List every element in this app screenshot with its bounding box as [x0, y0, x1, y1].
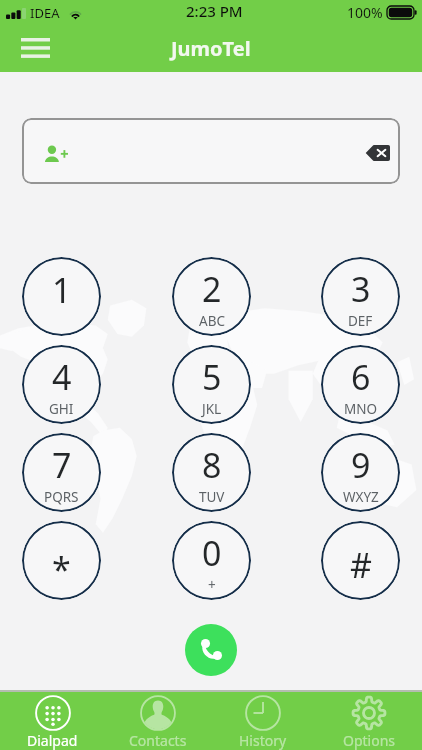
button[interactable]: 4: [22, 345, 101, 424]
button[interactable]: Call: [185, 624, 237, 676]
button[interactable]: 7: [22, 433, 101, 512]
button[interactable]: Dialpad: [0, 692, 105, 750]
staticText: *: [52, 546, 71, 592]
staticText: ABC: [199, 312, 225, 330]
staticText: #: [350, 542, 372, 588]
staticText: 5: [202, 354, 222, 400]
staticText: 2: [202, 266, 222, 312]
button[interactable]: Options: [316, 692, 422, 750]
staticText: IDEA: [30, 4, 60, 22]
button[interactable]: Contacts: [105, 692, 210, 750]
staticText: 3: [351, 266, 371, 312]
button[interactable]: 2: [172, 257, 251, 336]
staticText: 2:23 PM: [186, 1, 243, 21]
staticText: TUV: [199, 488, 225, 506]
button[interactable]: 0: [172, 521, 251, 600]
staticText: WXYZ: [343, 488, 379, 506]
staticText: 100%: [347, 3, 383, 22]
staticText: DEF: [348, 312, 373, 330]
staticText: MNO: [344, 400, 378, 418]
staticText: 9: [351, 442, 371, 488]
button[interactable]: Add contact: [44, 145, 68, 162]
staticText: GHI: [49, 400, 74, 418]
staticText: Dialpad: [27, 731, 78, 750]
staticText: Options: [343, 731, 396, 750]
button[interactable]: Menu: [9, 26, 61, 70]
staticText: JumoTel: [171, 35, 251, 62]
staticText: Contacts: [129, 731, 187, 750]
button[interactable]: 1: [22, 257, 101, 336]
button[interactable]: *: [22, 521, 101, 600]
staticText: 7: [52, 442, 72, 488]
button[interactable]: 3: [321, 257, 400, 336]
staticText: 8: [202, 442, 222, 488]
button[interactable]: 5: [172, 345, 251, 424]
staticText: 4: [52, 354, 72, 400]
button[interactable]: 9: [321, 433, 400, 512]
staticText: +: [208, 576, 216, 594]
button[interactable]: 6: [321, 345, 400, 424]
staticText: 6: [351, 354, 371, 400]
button[interactable]: 8: [172, 433, 251, 512]
button[interactable]: Backspace: [365, 145, 390, 161]
button[interactable]: History: [210, 692, 316, 750]
staticText: PQRS: [44, 488, 79, 506]
staticText: JKL: [202, 400, 222, 418]
button[interactable]: Add contact: [22, 118, 400, 184]
staticText: History: [239, 731, 287, 750]
staticText: 1: [52, 267, 72, 313]
staticText: 0: [202, 530, 222, 576]
button[interactable]: #: [321, 521, 400, 600]
